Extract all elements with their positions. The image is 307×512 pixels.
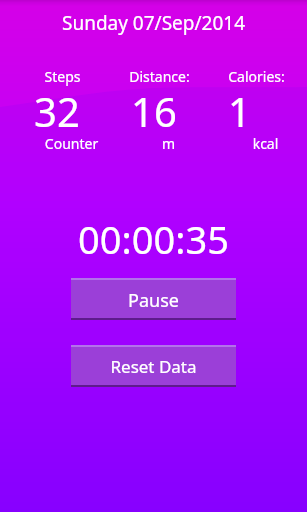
button[interactable]: Pause (71, 278, 236, 320)
staticText: 1 (228, 84, 251, 138)
staticText: Steps (14, 67, 111, 86)
button[interactable]: Sunday 07/Sep/2014 (0, 10, 307, 36)
staticText: kcal (217, 134, 307, 153)
staticText: 16 (131, 84, 177, 138)
staticText: Counter (23, 134, 120, 153)
staticText: Distance: (111, 67, 208, 86)
staticText: Calories: (208, 67, 305, 86)
staticText: m (120, 134, 217, 153)
staticText: Pause (71, 288, 236, 313)
staticText: 00:00:35 (0, 213, 307, 265)
staticText: Reset Data (71, 355, 236, 378)
staticText: 32 (34, 84, 80, 138)
button[interactable]: Reset Data (71, 345, 236, 387)
staticText: Sunday 07/Sep/2014 (0, 10, 307, 36)
